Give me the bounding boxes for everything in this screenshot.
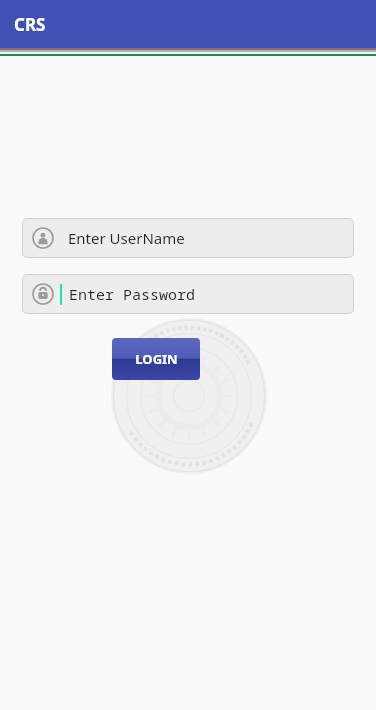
button[interactable]: LOGIN (112, 338, 200, 380)
staticText: Enter Password (69, 284, 196, 304)
button[interactable]: Enter UserName (22, 218, 354, 258)
staticText: Enter UserName (68, 228, 185, 248)
staticText: LOGIN (135, 350, 178, 368)
button[interactable]: Enter Password (22, 274, 354, 314)
staticText: CRS (14, 13, 46, 36)
